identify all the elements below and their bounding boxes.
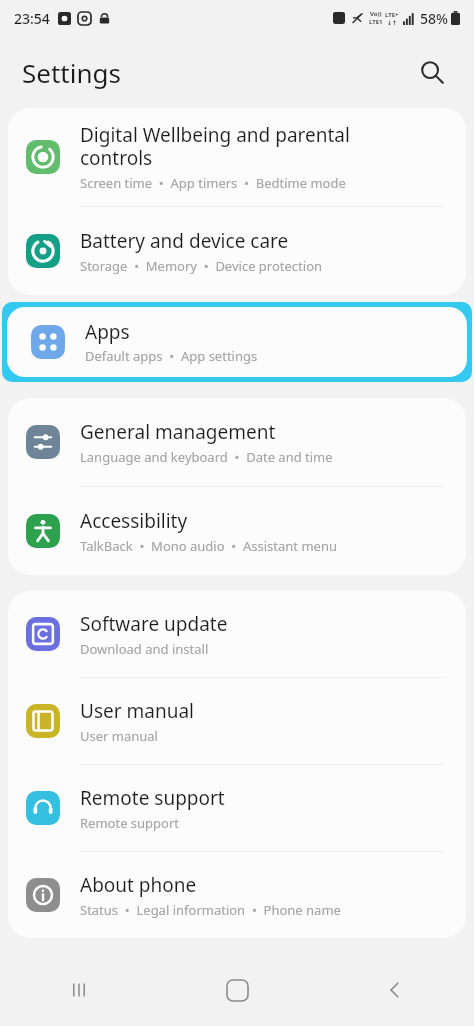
staticText: Download and install xyxy=(80,640,209,658)
staticText: 23:54 xyxy=(14,9,50,28)
staticText: Remote support xyxy=(80,785,225,811)
staticText: Battery and device care xyxy=(80,228,289,254)
staticText: About phone xyxy=(80,872,197,898)
staticText: Apps xyxy=(85,319,130,345)
staticText: TalkBack • Mono audio • Assistant menu xyxy=(80,537,337,555)
staticText: Status • Legal information • Phone name xyxy=(80,901,341,919)
staticText: Settings xyxy=(22,55,121,90)
staticText: 58% xyxy=(420,9,448,28)
button[interactable]: Back xyxy=(316,954,474,1026)
button[interactable]: Accessibility xyxy=(8,487,466,575)
button[interactable]: Software update xyxy=(8,591,466,677)
button[interactable]: Search xyxy=(412,52,452,92)
staticText: Software update xyxy=(80,611,228,637)
staticText: LTE+ xyxy=(385,11,399,19)
staticText: Screen time • App timers • Bedtime mode xyxy=(80,174,346,192)
button[interactable]: User manual xyxy=(8,678,466,764)
button[interactable]: Recent apps xyxy=(0,954,158,1026)
staticText: Language and keyboard • Date and time xyxy=(80,448,333,466)
staticText: Accessibility xyxy=(80,508,188,534)
staticText: Digital Wellbeing and parental controls xyxy=(80,122,350,171)
staticText: Remote support xyxy=(80,814,180,832)
button[interactable]: Remote support xyxy=(8,765,466,851)
staticText: User manual xyxy=(80,698,194,724)
staticText: Storage • Memory • Device protection xyxy=(80,257,323,275)
staticText: LTE1 xyxy=(369,18,383,26)
staticText: Vo)) xyxy=(370,10,382,18)
button[interactable]: General management xyxy=(8,398,466,486)
button[interactable]: Apps xyxy=(7,307,467,377)
button[interactable]: Battery and device care xyxy=(8,207,466,295)
button[interactable]: Digital Wellbeing and parental controls xyxy=(8,108,466,206)
staticText: ↓↑ xyxy=(387,19,398,26)
staticText: General management xyxy=(80,419,276,445)
button[interactable]: About phone xyxy=(8,852,466,938)
button[interactable]: Home xyxy=(158,954,316,1026)
staticText: Default apps • App settings xyxy=(85,347,258,365)
staticText: User manual xyxy=(80,727,158,745)
